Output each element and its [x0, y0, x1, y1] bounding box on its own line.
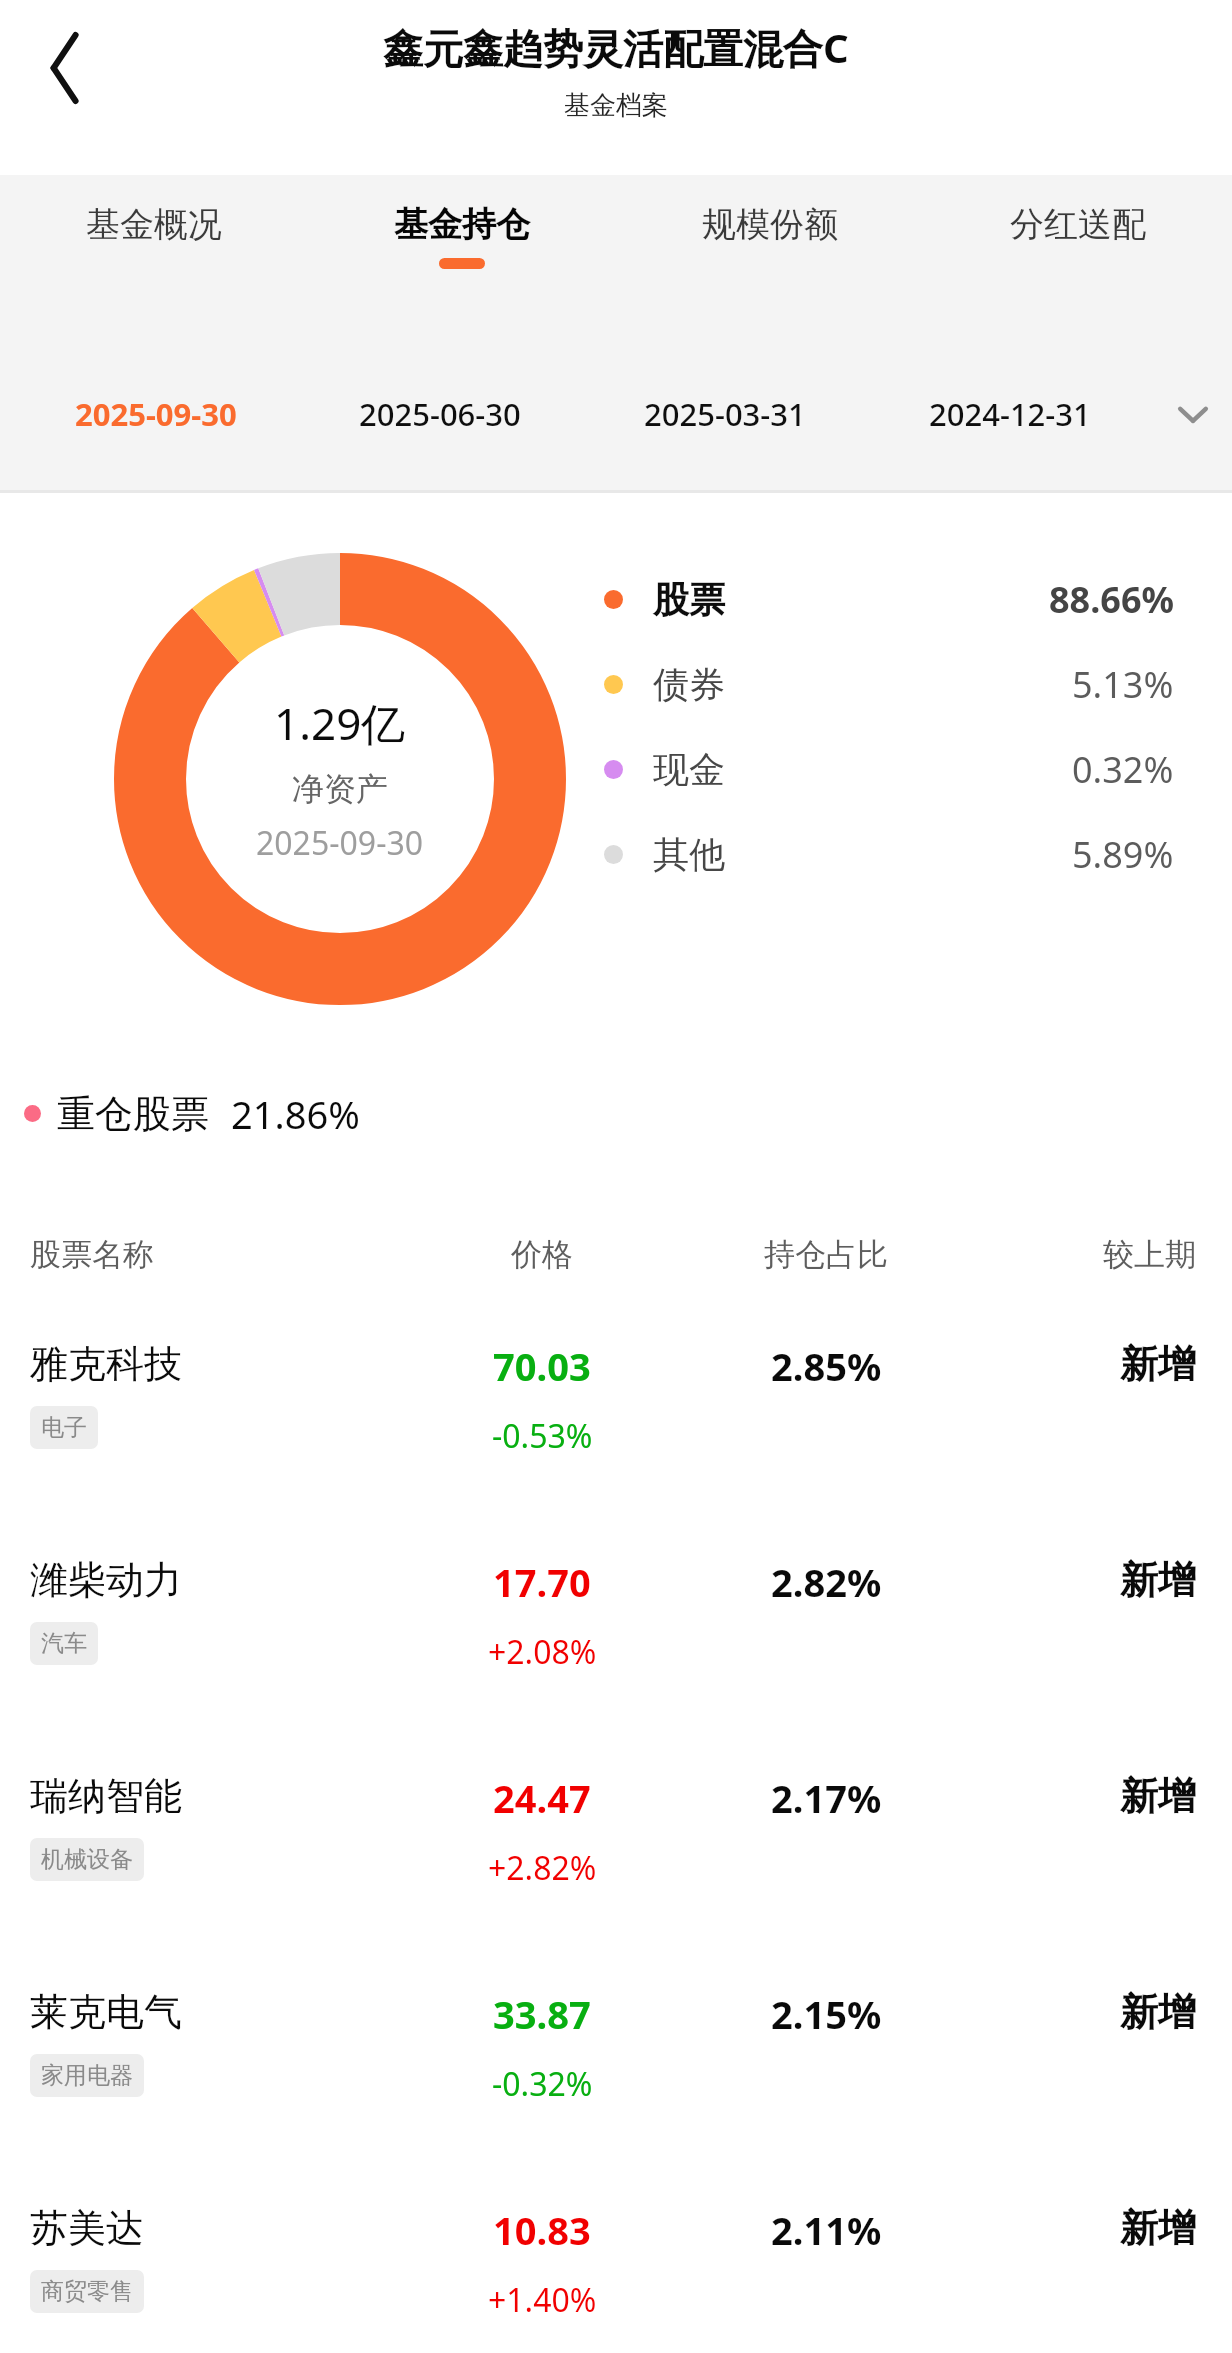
staticText: 价格 — [511, 1235, 573, 1274]
staticText: 瑞纳智能 — [30, 1772, 182, 1820]
staticText: 2.11% — [771, 2204, 882, 2256]
button[interactable]: 莱克电气 — [0, 1966, 1232, 2182]
staticText: 家用电器 — [41, 2061, 133, 2090]
staticText: 10.83 — [493, 2204, 591, 2256]
staticText: 商贸零售 — [41, 2277, 133, 2306]
staticText: 机械设备 — [41, 1845, 133, 1874]
staticText: 莱克电气 — [30, 1988, 182, 2036]
button[interactable]: 其他 — [604, 830, 1174, 879]
button[interactable]: 股票 — [604, 575, 1174, 624]
staticText: 债券 — [653, 662, 725, 707]
staticText: 潍柴动力 — [30, 1556, 182, 1604]
staticText: 净资产 — [292, 769, 388, 809]
staticText: 2.82% — [771, 1556, 882, 1608]
staticText: -0.32% — [492, 2062, 593, 2106]
button[interactable]: 2025-06-30 — [298, 337, 582, 490]
button[interactable]: 返回 — [14, 22, 106, 114]
staticText: 70.03 — [493, 1340, 591, 1392]
staticText: 17.70 — [493, 1556, 591, 1608]
staticText: 新增 — [1120, 2204, 1196, 2252]
staticText: 2025-09-30 — [256, 821, 424, 865]
button[interactable]: 苏美达 — [0, 2182, 1232, 2353]
staticText: 24.47 — [493, 1772, 591, 1824]
staticText: 其他 — [653, 832, 725, 877]
staticText: 股票 — [653, 577, 725, 622]
staticText: 分红送配 — [1010, 203, 1146, 246]
button[interactable]: 更多日期 — [1154, 337, 1232, 490]
staticText: 重仓股票 — [57, 1090, 209, 1138]
staticText: 2025-09-30 — [75, 393, 237, 435]
button[interactable]: 基金概况 — [0, 175, 308, 337]
staticText: 基金概况 — [86, 203, 222, 246]
staticText: +2.08% — [488, 1630, 597, 1674]
staticText: +1.40% — [488, 2278, 597, 2322]
staticText: 新增 — [1120, 1340, 1196, 1388]
button[interactable]: 2024-12-31 — [867, 337, 1152, 490]
staticText: 21.86% — [231, 1088, 360, 1140]
staticText: 2.15% — [771, 1988, 882, 2040]
staticText: +2.82% — [488, 1846, 597, 1890]
staticText: 1.29亿 — [274, 693, 406, 753]
staticText: 2025-06-30 — [359, 393, 521, 435]
staticText: 5.89% — [1072, 830, 1174, 879]
button[interactable]: 2025-09-30 — [14, 337, 298, 490]
staticText: 33.87 — [493, 1988, 591, 2040]
button[interactable]: 潍柴动力 — [0, 1534, 1232, 1750]
staticText: 股票名称 — [30, 1235, 154, 1274]
staticText: -0.53% — [492, 1414, 593, 1458]
button[interactable]: 现金 — [604, 745, 1174, 794]
staticText: 2024-12-31 — [929, 393, 1091, 435]
staticText: 基金持仓 — [394, 203, 530, 246]
staticText: 5.13% — [1072, 660, 1174, 709]
staticText: 鑫元鑫趋势灵活配置混合C — [383, 20, 849, 75]
button[interactable]: 基金持仓 — [308, 175, 616, 337]
staticText: 基金档案 — [564, 89, 668, 122]
staticText: 新增 — [1120, 1988, 1196, 2036]
button[interactable]: 雅克科技 — [0, 1318, 1232, 1534]
staticText: 2.17% — [771, 1772, 882, 1824]
staticText: 持仓占比 — [764, 1235, 888, 1274]
button[interactable]: 债券 — [604, 660, 1174, 709]
staticText: 苏美达 — [30, 2204, 144, 2252]
staticText: 汽车 — [41, 1629, 87, 1658]
staticText: 新增 — [1120, 1556, 1196, 1604]
staticText: 雅克科技 — [30, 1340, 182, 1388]
staticText: 2025-03-31 — [644, 393, 806, 435]
staticText: 较上期 — [1103, 1235, 1196, 1274]
staticText: 规模份额 — [702, 203, 838, 246]
staticText: 88.66% — [1049, 575, 1174, 624]
staticText: 现金 — [653, 747, 725, 792]
staticText: 电子 — [41, 1413, 87, 1442]
staticText: 0.32% — [1072, 745, 1174, 794]
button[interactable]: 重仓股票 — [24, 1037, 1232, 1190]
button[interactable]: 分红送配 — [924, 175, 1232, 337]
button[interactable]: 规模份额 — [616, 175, 924, 337]
button[interactable]: 瑞纳智能 — [0, 1750, 1232, 1966]
staticText: 新增 — [1120, 1772, 1196, 1820]
button[interactable]: 2025-03-31 — [582, 337, 867, 490]
staticText: 2.85% — [771, 1340, 882, 1392]
